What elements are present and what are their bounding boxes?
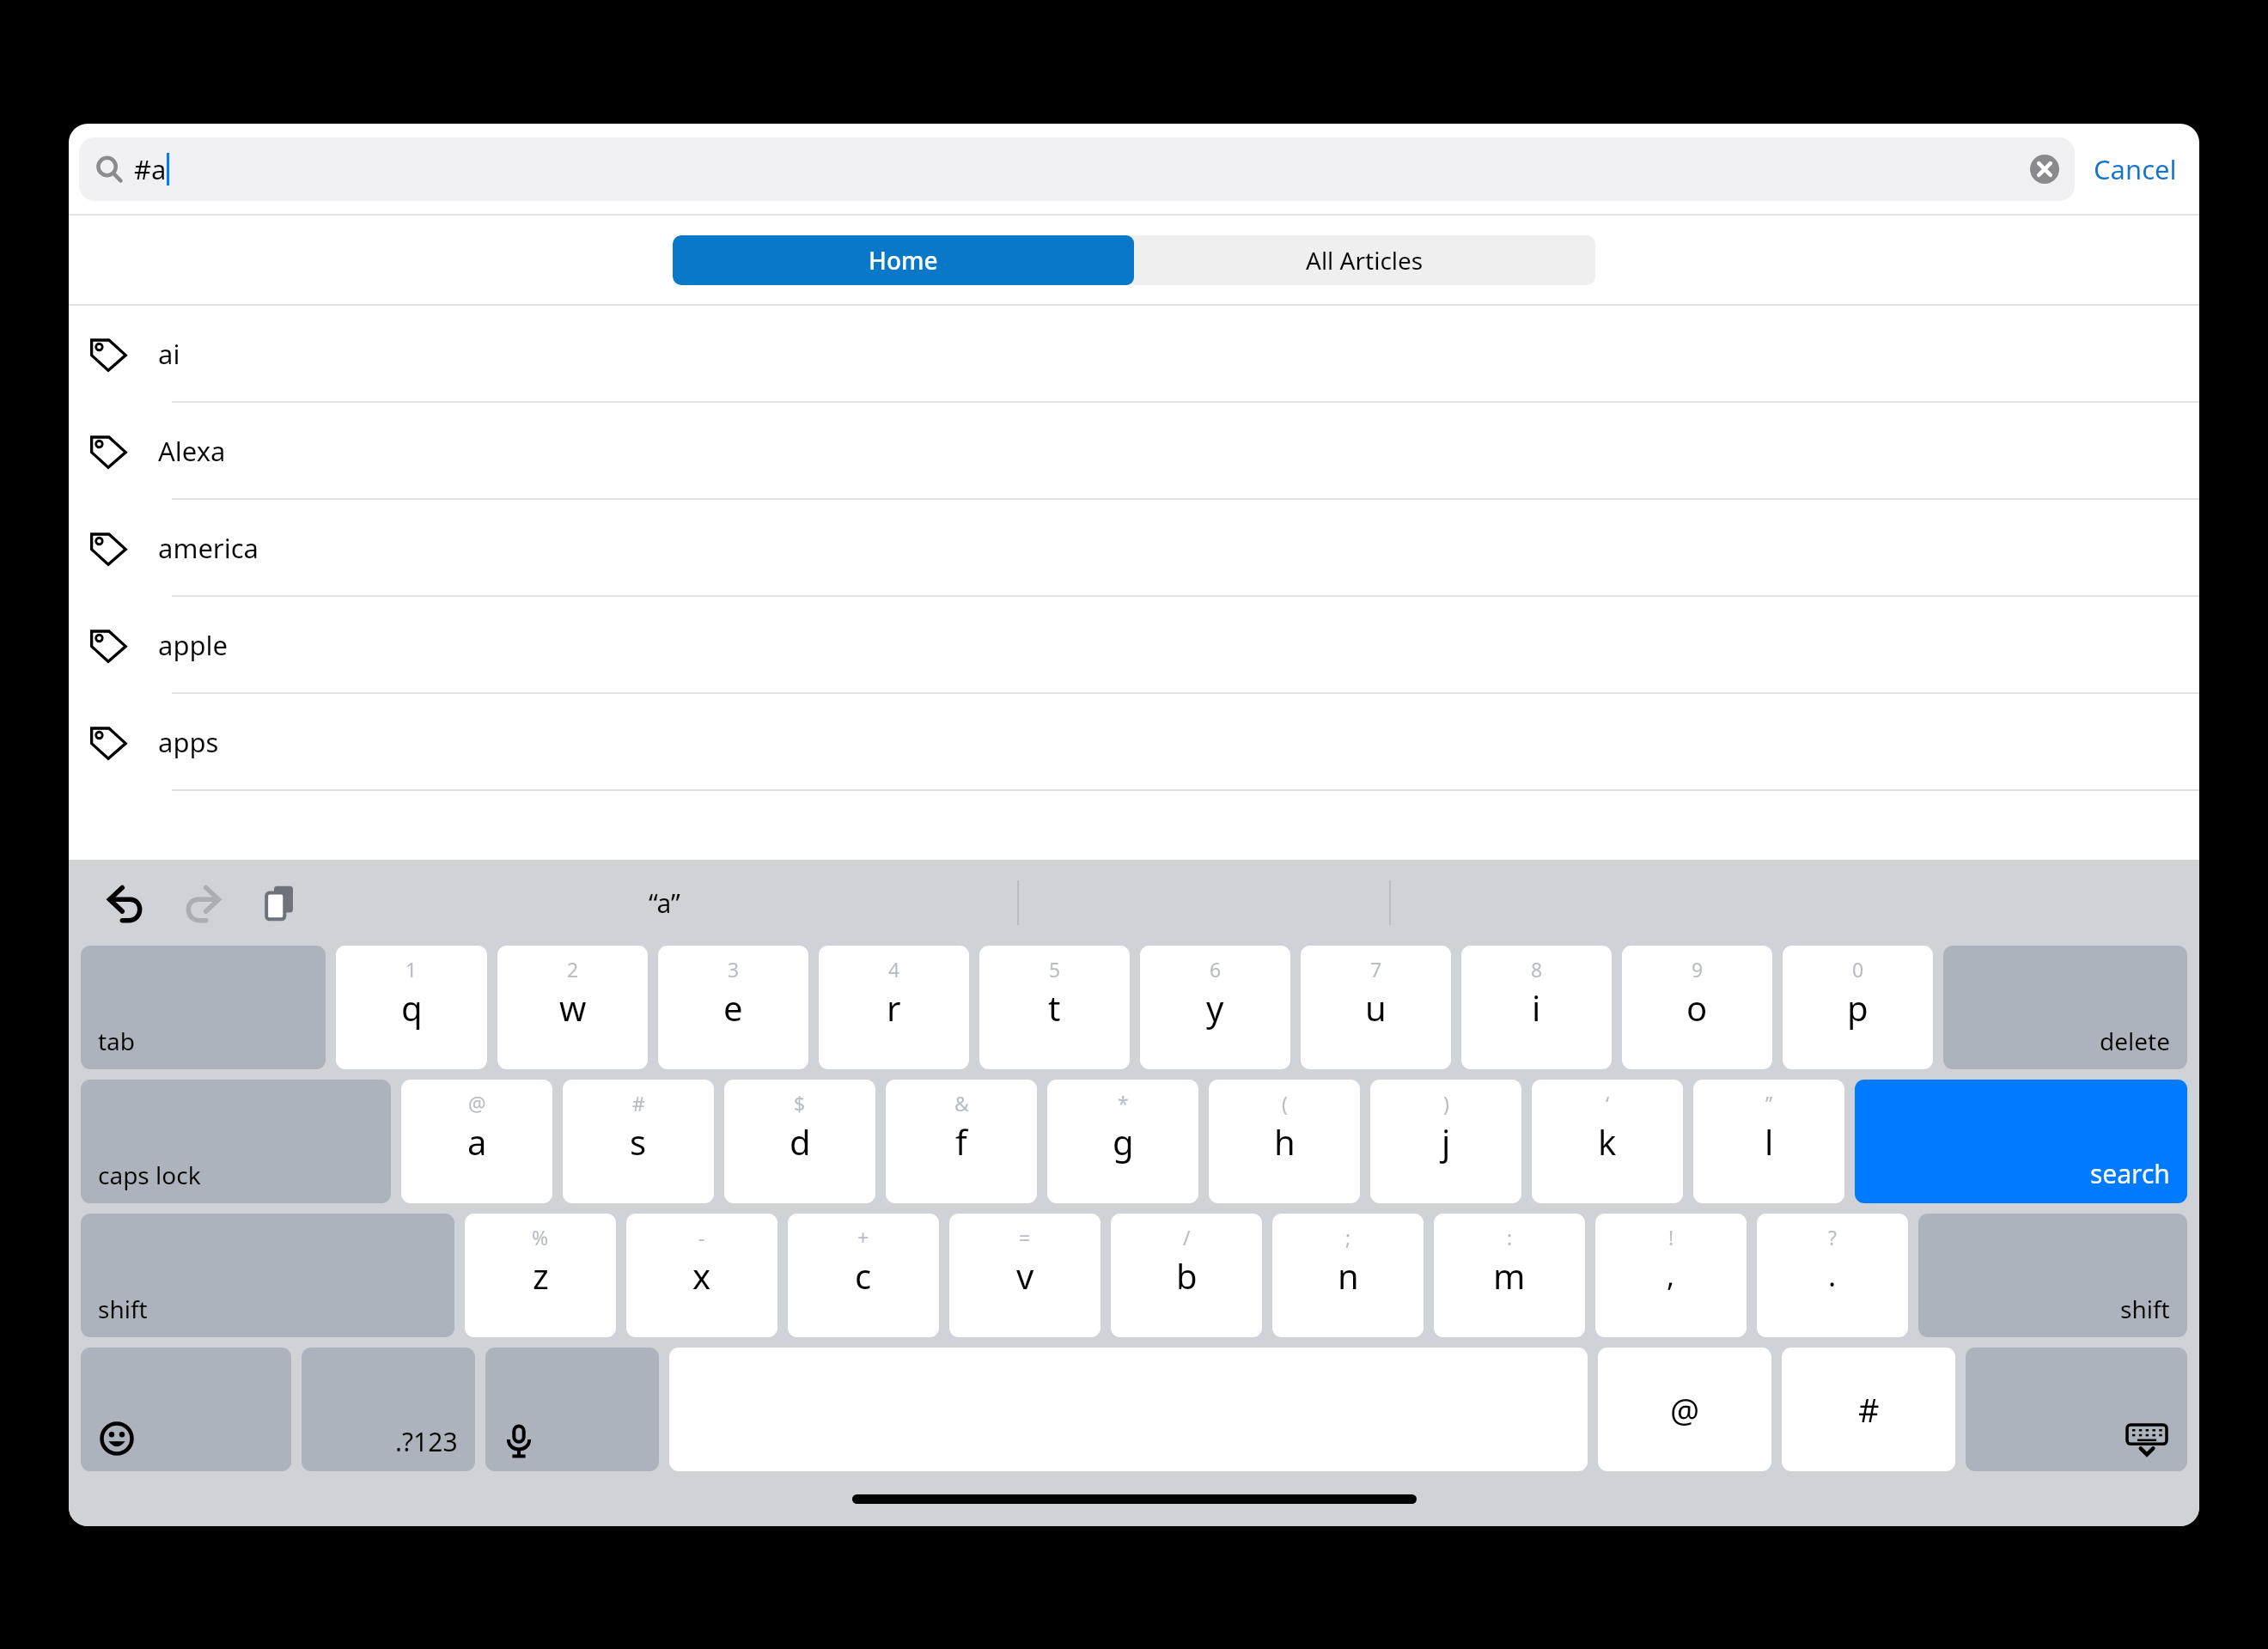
- button[interactable]: /: [1111, 1214, 1262, 1337]
- button[interactable]: #: [563, 1080, 714, 1203]
- staticText: delete: [2100, 1025, 2170, 1057]
- staticText: ai: [158, 336, 180, 372]
- button[interactable]: :: [1434, 1214, 1585, 1337]
- staticText: =: [1019, 1224, 1031, 1250]
- button[interactable]: @: [1598, 1348, 1771, 1471]
- button[interactable]: All Articles: [1134, 235, 1595, 285]
- button[interactable]: tab: [81, 946, 326, 1069]
- button[interactable]: ai: [69, 306, 2199, 403]
- staticText: c: [855, 1252, 872, 1299]
- staticText: :: [1507, 1224, 1513, 1250]
- staticText: 5: [1049, 956, 1061, 983]
- button[interactable]: !: [1595, 1214, 1747, 1337]
- staticText: ,: [1667, 1256, 1675, 1295]
- button[interactable]: (: [1209, 1080, 1360, 1203]
- button[interactable]: shift: [1918, 1214, 2187, 1337]
- button[interactable]: 0: [1783, 946, 1933, 1069]
- staticText: ‘: [1606, 1090, 1610, 1117]
- button[interactable]: Cancel: [2075, 143, 2196, 196]
- staticText: shift: [98, 1293, 148, 1325]
- staticText: /: [1183, 1224, 1191, 1250]
- staticText: i: [1532, 984, 1541, 1031]
- staticText: p: [1847, 984, 1869, 1031]
- staticText: h: [1274, 1118, 1296, 1165]
- button[interactable]: -: [626, 1214, 777, 1337]
- button[interactable]: Dictation: [485, 1348, 659, 1471]
- button[interactable]: 3: [658, 946, 808, 1069]
- staticText: ”: [1765, 1090, 1773, 1117]
- button[interactable]: 5: [979, 946, 1130, 1069]
- staticText: r: [887, 984, 901, 1031]
- staticText: w: [559, 984, 587, 1031]
- button[interactable]: ): [1370, 1080, 1521, 1203]
- button[interactable]: Alexa: [69, 403, 2199, 500]
- button[interactable]: 1: [336, 946, 487, 1069]
- button[interactable]: #: [1782, 1348, 1955, 1471]
- staticText: Home: [869, 244, 938, 277]
- button[interactable]: search: [1855, 1080, 2187, 1203]
- staticText: All Articles: [1306, 244, 1424, 277]
- button[interactable]: Home: [673, 235, 1134, 285]
- button[interactable]: 7: [1301, 946, 1451, 1069]
- button[interactable]: =: [949, 1214, 1100, 1337]
- staticText: (: [1282, 1090, 1288, 1117]
- staticText: +: [857, 1224, 869, 1250]
- staticText: @: [1670, 1387, 1700, 1432]
- button[interactable]: &: [886, 1080, 1037, 1203]
- staticText: #: [1858, 1387, 1880, 1432]
- staticText: v: [1016, 1252, 1034, 1299]
- button[interactable]: ;: [1272, 1214, 1424, 1337]
- staticText: 8: [1531, 956, 1543, 983]
- button[interactable]: #a: [79, 137, 2075, 201]
- staticText: q: [401, 984, 423, 1031]
- staticText: n: [1338, 1252, 1359, 1299]
- button[interactable]: 9: [1622, 946, 1772, 1069]
- button[interactable]: +: [788, 1214, 939, 1337]
- staticText: 0: [1852, 956, 1864, 983]
- button[interactable]: Redo: [172, 872, 234, 934]
- button[interactable]: caps lock: [81, 1080, 391, 1203]
- staticText: z: [533, 1252, 549, 1299]
- staticText: d: [790, 1118, 811, 1165]
- button[interactable]: 2: [497, 946, 648, 1069]
- button[interactable]: Undo: [94, 872, 156, 934]
- button[interactable]: ‘: [1532, 1080, 1683, 1203]
- button[interactable]: Emoji: [81, 1348, 291, 1471]
- button[interactable]: %: [465, 1214, 616, 1337]
- staticText: 9: [1692, 956, 1704, 983]
- button[interactable]: delete: [1943, 946, 2187, 1069]
- staticText: *: [1118, 1090, 1129, 1117]
- staticText: -: [698, 1224, 705, 1250]
- button[interactable]: ”: [1693, 1080, 1844, 1203]
- staticText: ): [1443, 1090, 1449, 1117]
- button[interactable]: Paste: [249, 872, 311, 934]
- button[interactable]: america: [69, 500, 2199, 597]
- button[interactable]: ?: [1757, 1214, 1908, 1337]
- button[interactable]: Hide keyboard: [1966, 1348, 2187, 1471]
- staticText: caps lock: [98, 1159, 201, 1191]
- staticText: america: [158, 530, 259, 566]
- button[interactable]: 4: [819, 946, 969, 1069]
- staticText: e: [723, 984, 743, 1031]
- button[interactable]: apple: [69, 597, 2199, 694]
- button[interactable]: @: [401, 1080, 552, 1203]
- staticText: t: [1048, 984, 1061, 1031]
- staticText: !: [1668, 1224, 1674, 1250]
- button[interactable]: shift: [81, 1214, 454, 1337]
- button[interactable]: apps: [69, 694, 2199, 791]
- staticText: x: [692, 1252, 711, 1299]
- staticText: shift: [2120, 1293, 2170, 1325]
- staticText: .?123: [395, 1424, 458, 1459]
- button[interactable]: *: [1047, 1080, 1198, 1203]
- button[interactable]: .?123: [302, 1348, 475, 1471]
- staticText: search: [2090, 1156, 2170, 1191]
- staticText: &: [954, 1090, 969, 1117]
- staticText: 4: [888, 956, 900, 983]
- button[interactable]: $: [724, 1080, 875, 1203]
- staticText: @: [468, 1090, 486, 1117]
- button[interactable]: 6: [1140, 946, 1290, 1069]
- button[interactable]: 8: [1461, 946, 1612, 1069]
- button[interactable]: Clear text: [2030, 155, 2059, 184]
- staticText: a: [467, 1118, 487, 1165]
